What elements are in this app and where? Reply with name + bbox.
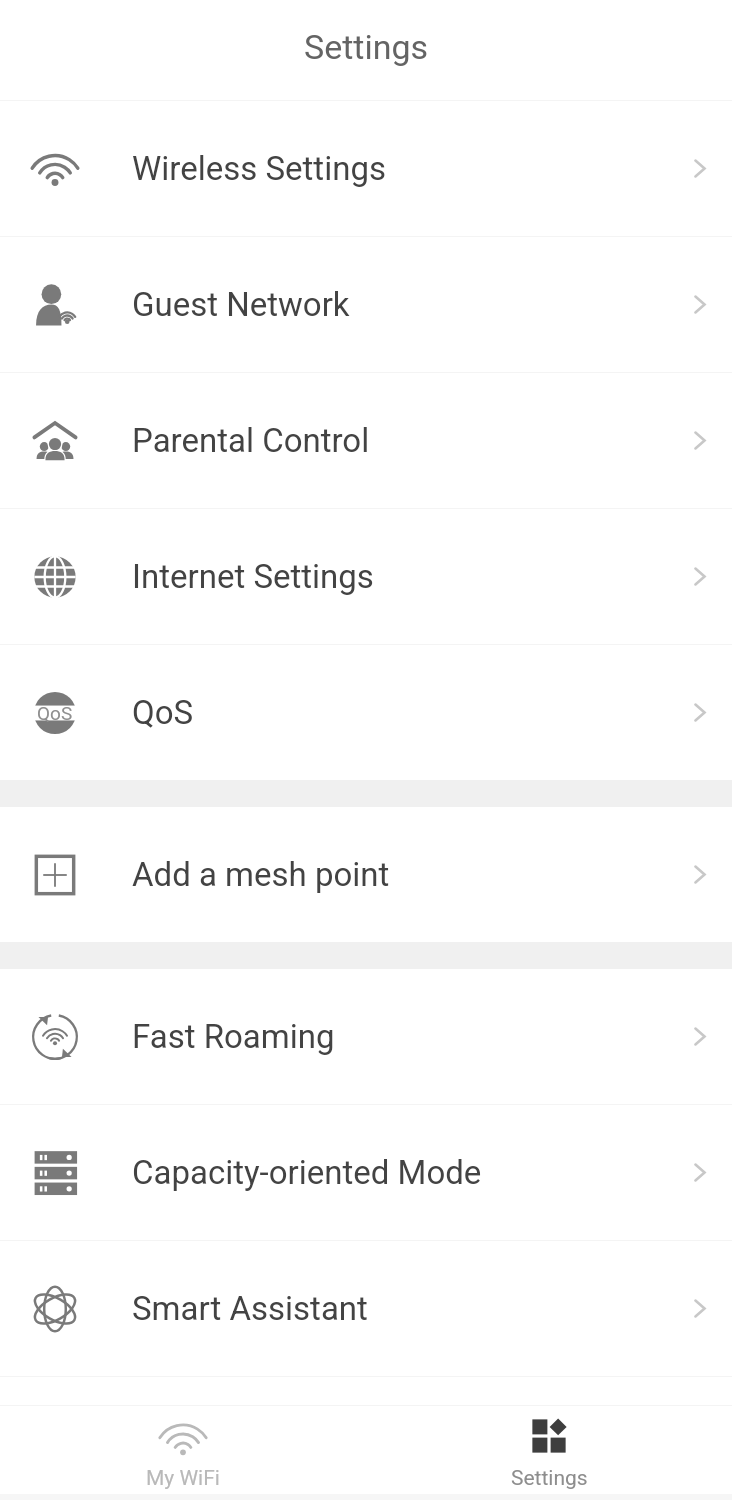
staticText: Internet Settings <box>132 557 374 596</box>
staticText: Smart Assistant <box>132 1289 368 1328</box>
button[interactable]: Add a mesh point <box>0 807 732 942</box>
staticText: Fast Roaming <box>132 1017 335 1056</box>
button[interactable]: Guest Network <box>0 237 732 372</box>
button[interactable]: Settings <box>366 1406 732 1494</box>
staticText: Guest Network <box>132 285 350 324</box>
button[interactable]: QoS <box>0 645 732 780</box>
button[interactable]: My WiFi <box>0 1406 366 1494</box>
staticText: My WiFi <box>146 1466 220 1491</box>
button[interactable]: Capacity-oriented Mode <box>0 1105 732 1240</box>
staticText: Parental Control <box>132 421 370 460</box>
staticText: Settings <box>304 27 429 67</box>
staticText: Settings <box>511 1466 588 1491</box>
staticText: QoS <box>132 693 194 732</box>
staticText: QoS <box>37 702 73 724</box>
button[interactable]: Parental Control <box>0 373 732 508</box>
staticText: Capacity-oriented Mode <box>132 1153 482 1192</box>
staticText: Add a mesh point <box>132 855 390 894</box>
button[interactable]: Wireless Settings <box>0 101 732 236</box>
button[interactable]: Internet Settings <box>0 509 732 644</box>
button[interactable]: Fast Roaming <box>0 969 732 1104</box>
button[interactable]: Smart Assistant <box>0 1241 732 1376</box>
staticText: Wireless Settings <box>132 149 386 188</box>
